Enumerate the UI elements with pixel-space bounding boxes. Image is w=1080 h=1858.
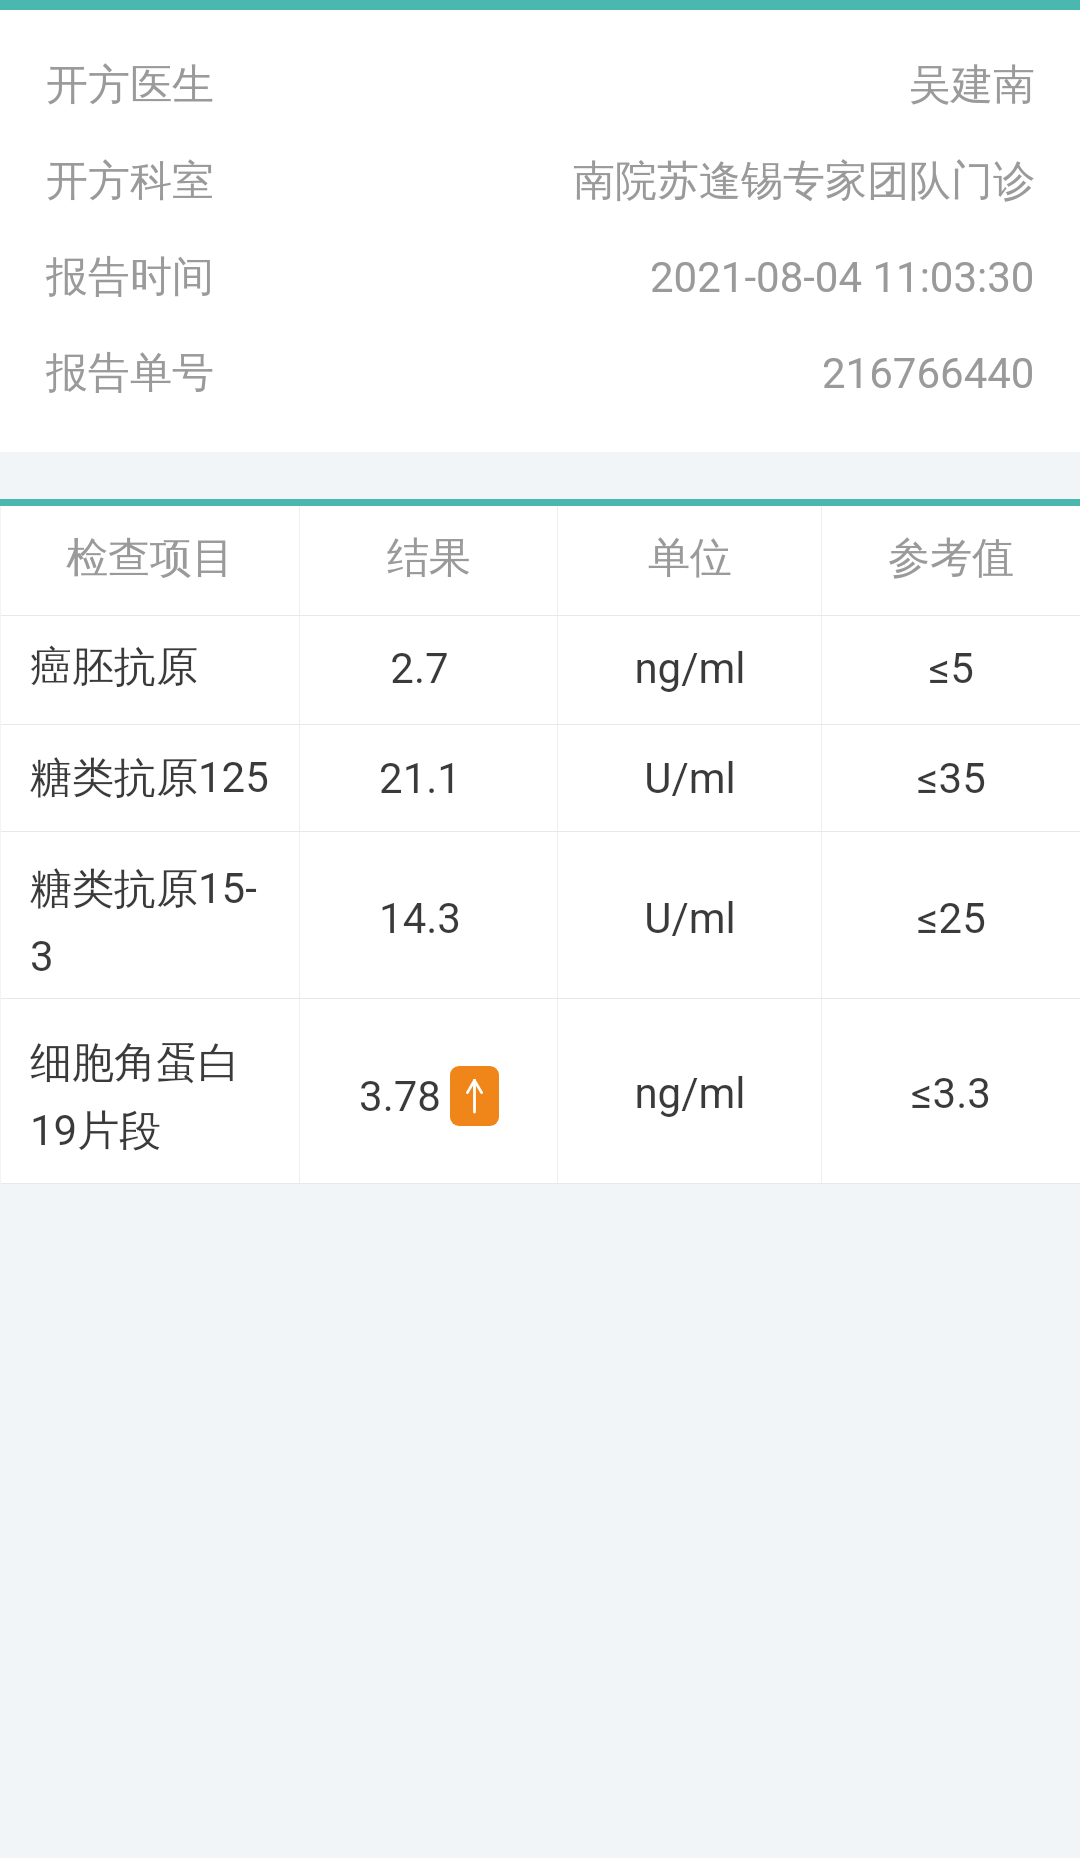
staticText: 糖类抗原125	[30, 752, 269, 805]
button[interactable]: 糖类抗原125	[0, 725, 1080, 832]
staticText: 21.1	[379, 754, 461, 803]
staticText: 结果	[387, 532, 471, 585]
staticText: 检查项目	[66, 532, 234, 585]
staticText: 报告单号	[46, 347, 214, 400]
staticText: 2021-08-04 11:03:30	[650, 253, 1035, 302]
staticText: U/ml	[644, 894, 736, 943]
button[interactable]: 开方科室	[0, 133, 1080, 229]
staticText: ng/ml	[634, 1069, 746, 1118]
staticText: 开方医生	[46, 59, 214, 112]
staticText: 糖类抗原15- 3	[30, 863, 257, 981]
staticText: ≤3.3	[911, 1069, 991, 1118]
staticText: ≤5	[929, 644, 974, 693]
button[interactable]: 开方医生	[0, 37, 1080, 133]
button[interactable]: 细胞角蛋白19片段	[0, 999, 1080, 1184]
staticText: 参考值	[888, 532, 1014, 585]
staticText: ng/ml	[634, 644, 746, 693]
button[interactable]: 报告时间	[0, 229, 1080, 325]
staticText: 细胞角蛋白19片段	[30, 1037, 275, 1157]
staticText: 单位	[648, 532, 732, 585]
staticText: 癌胚抗原	[30, 641, 198, 694]
staticText: 3.78	[359, 1072, 441, 1121]
staticText: 报告时间	[46, 251, 214, 304]
staticText: 开方科室	[46, 155, 214, 208]
staticText: ≤35	[917, 754, 986, 803]
staticText: 14.3	[379, 894, 461, 943]
button[interactable]: 检查项目	[0, 506, 1080, 616]
staticText: U/ml	[644, 754, 736, 803]
staticText: 吴建南	[909, 59, 1035, 112]
staticText: 216766440	[822, 349, 1035, 398]
staticText: ≤25	[917, 894, 986, 943]
staticText: 南院苏逢锡专家团队门诊	[573, 155, 1035, 208]
button[interactable]: 糖类抗原15- 3	[0, 832, 1080, 999]
staticText: 2.7	[390, 644, 449, 693]
button[interactable]: 报告单号	[0, 325, 1080, 421]
button[interactable]: 癌胚抗原	[0, 616, 1080, 725]
other: Result above reference range	[450, 1066, 499, 1126]
